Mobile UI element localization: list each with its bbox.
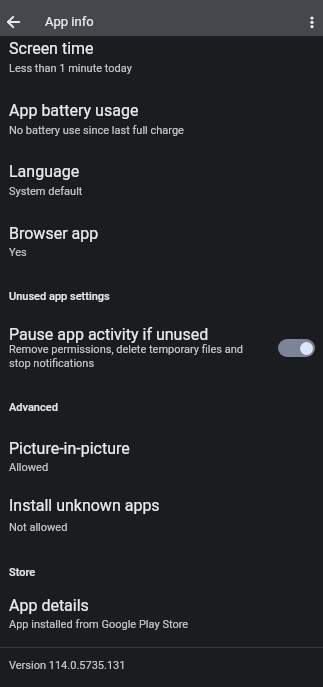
button[interactable] bbox=[0, 32, 323, 84]
staticText: System default bbox=[9, 185, 83, 198]
button[interactable] bbox=[0, 0, 32, 36]
button[interactable] bbox=[0, 488, 323, 546]
button[interactable] bbox=[278, 339, 315, 357]
button[interactable] bbox=[0, 589, 323, 644]
button[interactable] bbox=[0, 308, 323, 382]
staticText: Install unknown apps bbox=[9, 496, 160, 515]
staticText: Version 114.0.5735.131 bbox=[9, 659, 126, 672]
button[interactable] bbox=[0, 430, 323, 485]
staticText: Browser app bbox=[9, 224, 99, 243]
staticText: Pause app activity if unused bbox=[9, 325, 209, 344]
staticText: Remove permissions, delete temporary fil… bbox=[9, 343, 244, 356]
staticText: App details bbox=[9, 596, 89, 615]
button[interactable] bbox=[301, 0, 323, 36]
staticText: Less than 1 minute today bbox=[9, 62, 132, 75]
button[interactable] bbox=[0, 94, 323, 146]
staticText: Screen time bbox=[9, 39, 94, 58]
staticText: Picture-in-picture bbox=[9, 439, 130, 458]
staticText: stop notifications bbox=[9, 357, 95, 370]
button[interactable] bbox=[0, 155, 323, 208]
staticText: Not allowed bbox=[9, 521, 68, 534]
staticText: Language bbox=[9, 162, 80, 181]
staticText: Allowed bbox=[9, 461, 49, 474]
staticText: Unused app settings bbox=[9, 290, 110, 303]
staticText: Store bbox=[9, 566, 36, 579]
staticText: Yes bbox=[9, 246, 27, 259]
staticText: No battery use since last full charge bbox=[9, 124, 184, 137]
button[interactable] bbox=[0, 217, 323, 269]
staticText: App installed from Google Play Store bbox=[9, 618, 189, 631]
staticText: Advanced bbox=[9, 401, 58, 414]
staticText: App info bbox=[45, 14, 94, 29]
staticText: App battery usage bbox=[9, 101, 139, 120]
